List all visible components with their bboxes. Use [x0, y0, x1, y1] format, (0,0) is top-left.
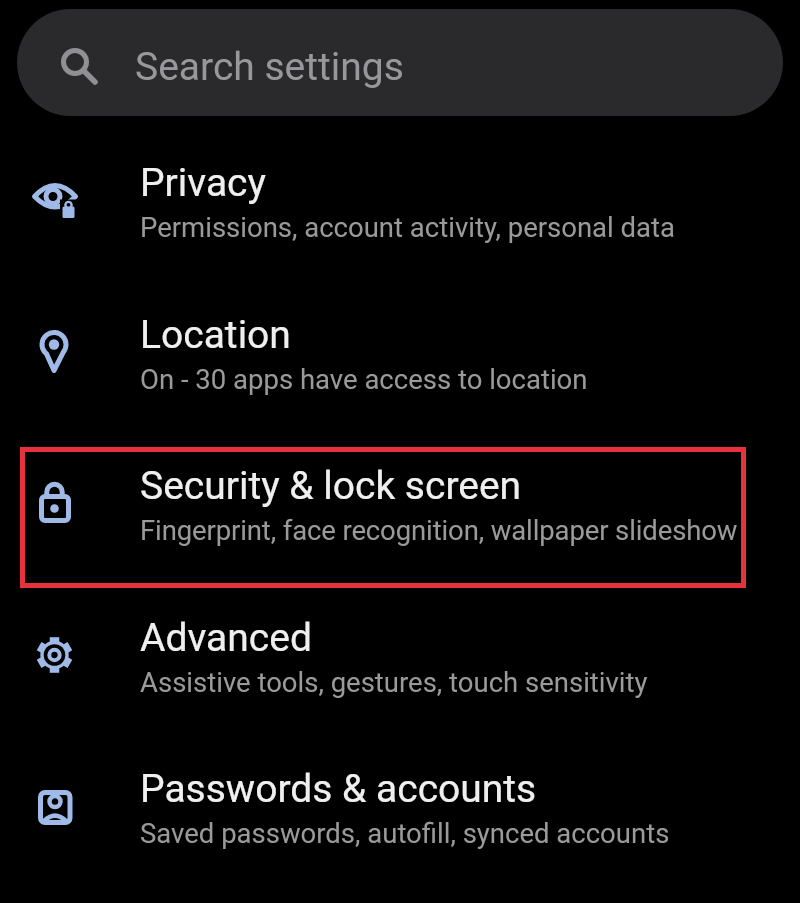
staticText: Security & lock screen	[140, 463, 522, 509]
button[interactable]: Passwords & accounts	[0, 731, 800, 883]
staticText: Fingerprint, face recognition, wallpaper…	[140, 514, 738, 546]
button[interactable]: Advanced	[0, 580, 800, 732]
staticText: Advanced	[140, 615, 312, 661]
staticText: On - 30 apps have access to location	[140, 363, 588, 395]
staticText: Search settings	[135, 44, 404, 90]
button[interactable]: Privacy	[0, 125, 800, 277]
button[interactable]: Security & lock screen	[0, 428, 800, 580]
staticText: Saved passwords, autofill, synced accoun…	[140, 817, 670, 849]
staticText: Assistive tools, gestures, touch sensiti…	[140, 666, 648, 698]
staticText: Location	[140, 312, 291, 358]
button[interactable]: Search settings	[17, 9, 783, 116]
button[interactable]: Location	[0, 277, 800, 429]
staticText: Passwords & accounts	[140, 766, 537, 812]
staticText: Permissions, account activity, personal …	[140, 211, 675, 243]
staticText: Privacy	[140, 160, 266, 206]
